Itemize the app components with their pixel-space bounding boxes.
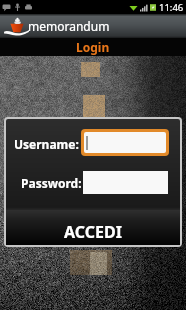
other: memorandum logo <box>3 16 29 38</box>
staticText: Password: <box>21 175 82 191</box>
staticText: memorandum <box>28 18 110 34</box>
staticText: ACCEDI <box>64 221 122 243</box>
button[interactable]: memorandum logo <box>0 14 186 38</box>
button[interactable]: ACCEDI <box>6 210 180 245</box>
staticText: Username: <box>14 136 79 152</box>
staticText: 11:46 <box>159 1 184 14</box>
button[interactable] <box>84 132 166 153</box>
staticText: Login <box>76 39 110 55</box>
